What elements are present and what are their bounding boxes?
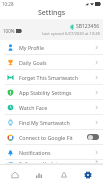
button[interactable]: Watch Face (0, 100, 103, 114)
staticText: Watch Face (19, 104, 94, 111)
staticText: Settings (38, 8, 66, 18)
button[interactable]: My Profile (0, 40, 103, 54)
staticText: 100% (3, 28, 15, 34)
staticText: App Stability Settings (19, 89, 94, 96)
staticText: My Profile (19, 44, 94, 51)
button[interactable]: Activity (29, 166, 49, 183)
button[interactable]: Forget This Smartwatch (0, 70, 103, 84)
staticText: Last synced 6/27/2020 at 10:28 (42, 31, 100, 36)
button[interactable]: Home (5, 166, 25, 183)
staticText: Software Update (19, 160, 94, 163)
button[interactable]: Find My Smartwatch (0, 115, 103, 129)
button[interactable]: Notifications (0, 145, 103, 159)
staticText: SB123456 (76, 23, 100, 30)
staticText: Find My Smartwatch (19, 119, 94, 126)
button[interactable]: Connect to Google Fit (0, 130, 103, 144)
staticText: Forget This Smartwatch (19, 74, 94, 81)
button[interactable]: Settings (78, 166, 98, 183)
staticText: Notifications (19, 149, 94, 156)
staticText: Daily Goals (19, 59, 94, 66)
button[interactable]: Software Update (0, 160, 103, 163)
staticText: 10:28 (2, 1, 14, 7)
button[interactable]: App Stability Settings (0, 85, 103, 99)
button[interactable]: Alerts (54, 166, 74, 183)
staticText: Connect to Google Fit (19, 134, 87, 141)
button[interactable]: Daily Goals (0, 55, 103, 69)
